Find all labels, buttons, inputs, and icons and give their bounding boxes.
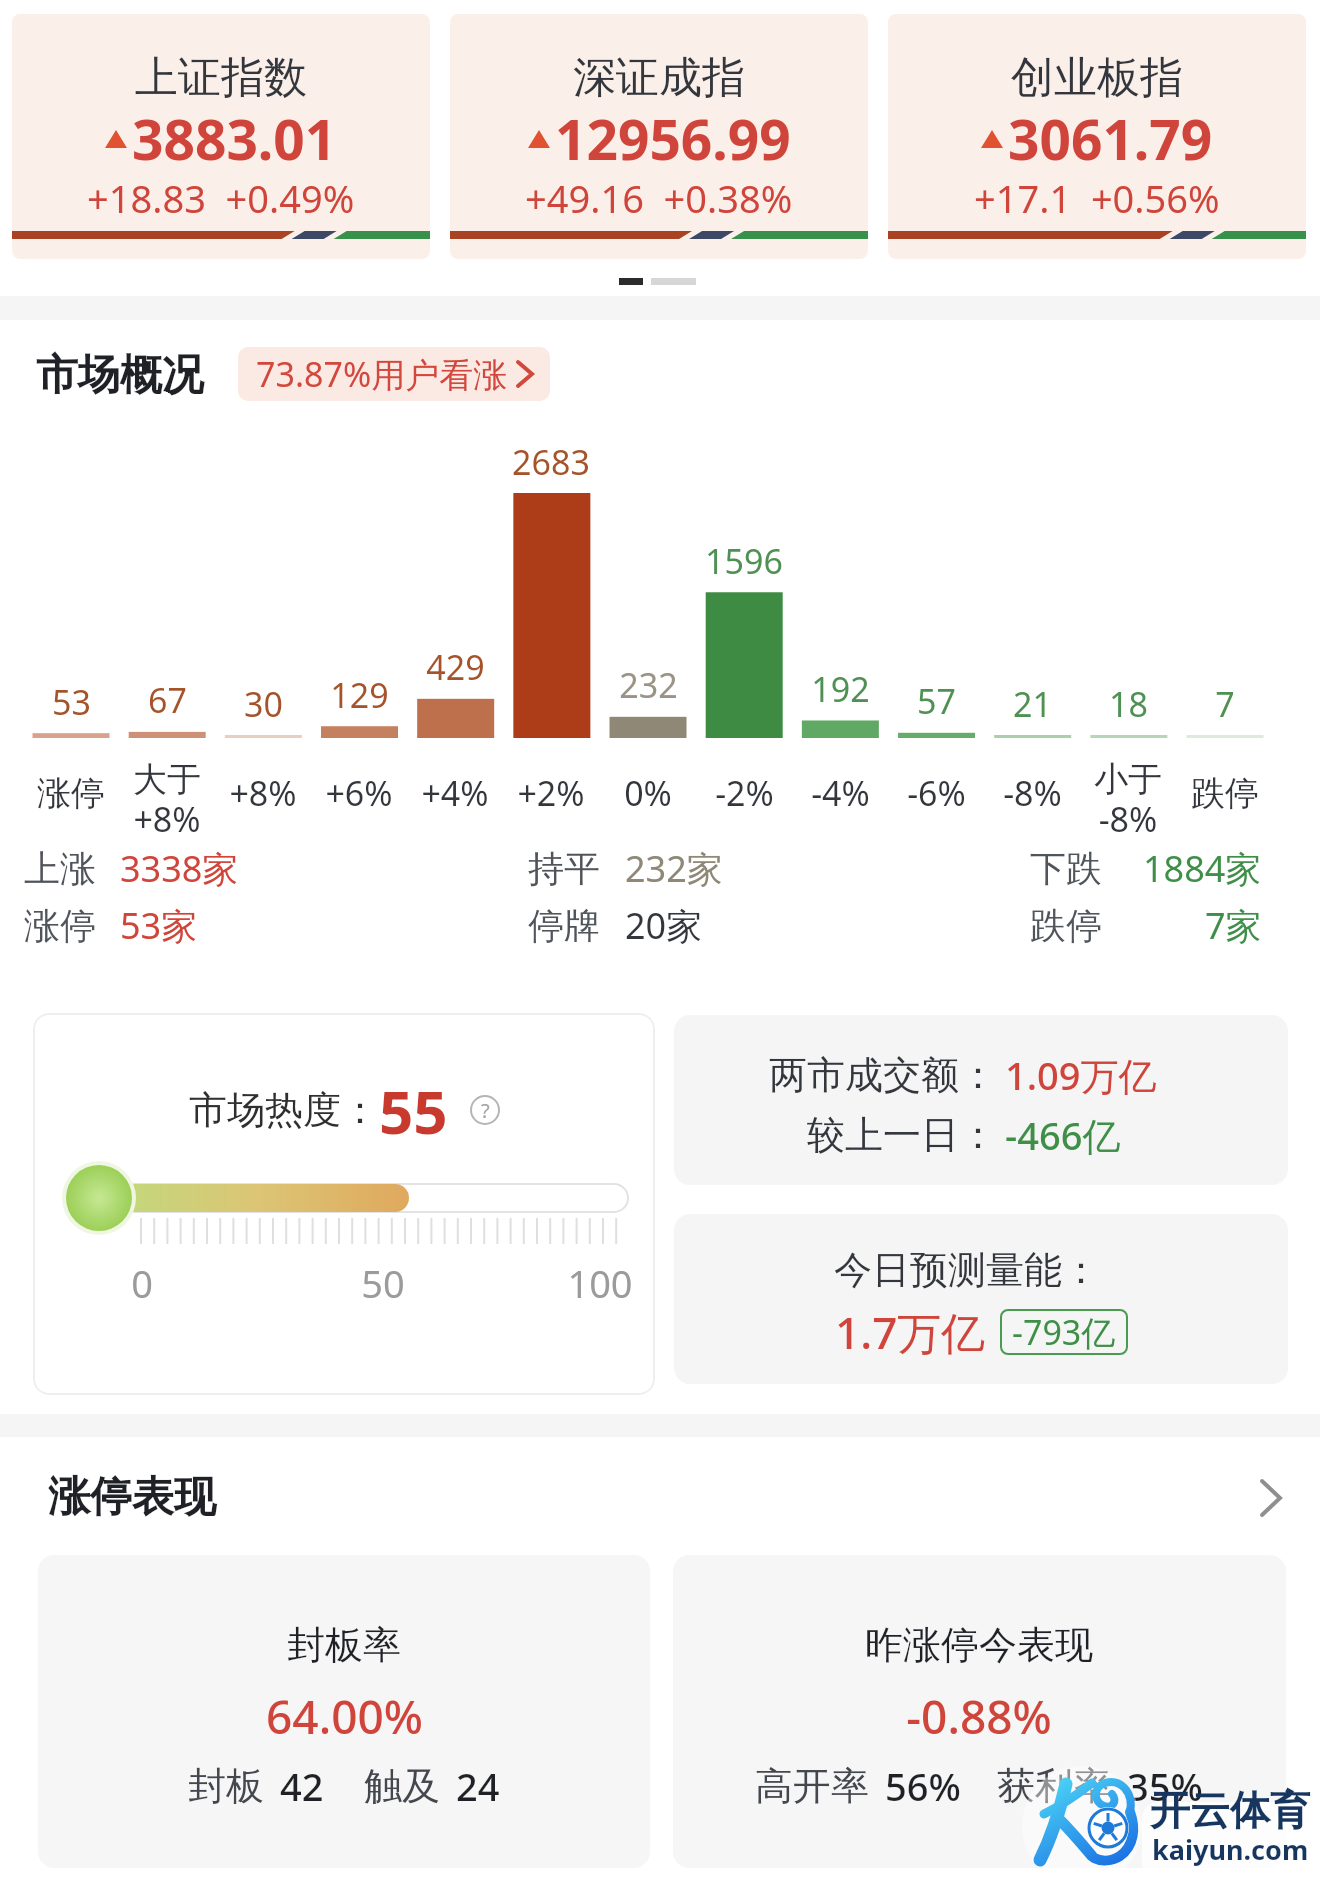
staticText: 涨停 [24, 903, 96, 948]
staticText: -793亿 [1012, 1309, 1116, 1355]
staticText: -0.88% [906, 1685, 1052, 1748]
staticText: 创业板指 [1011, 51, 1183, 105]
staticText: +18.83 +0.49% [87, 172, 355, 224]
button[interactable]: 上证指数 [12, 14, 430, 259]
staticText: 较上一日： [807, 1111, 997, 1159]
staticText: ? [481, 1097, 490, 1124]
staticText: 3883.01 [132, 101, 337, 176]
staticText: 1.09万亿 [1005, 1049, 1157, 1101]
staticText: 两市成交额： [769, 1051, 997, 1099]
button[interactable] [38, 1555, 650, 1868]
staticText: 7 [1215, 681, 1235, 727]
staticText: 67 [148, 677, 187, 723]
staticText: 3338家 [120, 844, 239, 893]
staticText: 今日预测量能： [834, 1246, 1100, 1294]
staticText: -2% [715, 770, 774, 816]
button[interactable]: 深证成指 [450, 14, 868, 259]
staticText: 232家 [625, 844, 723, 893]
staticText: 0 [131, 1257, 153, 1309]
staticText: 50 [361, 1257, 405, 1309]
staticText: 1596 [705, 538, 783, 584]
staticText: 停牌 [528, 903, 600, 948]
button[interactable]: 创业板指 [888, 14, 1306, 259]
button[interactable]: 73.87%用户看涨 [238, 347, 550, 401]
staticText: 持平 [528, 846, 600, 891]
staticText: 73.87%用户看涨 [256, 351, 508, 397]
staticText: 高开率 [755, 1762, 869, 1810]
staticText: 下跌 [1030, 846, 1102, 891]
staticText: 封板 [188, 1762, 264, 1810]
staticText: -4% [811, 770, 870, 816]
staticText: 跌停 [1030, 903, 1102, 948]
staticText: 30 [244, 681, 283, 727]
staticText: 21 [1013, 681, 1052, 727]
staticText: +8% [229, 770, 297, 816]
staticText: 昨涨停今表现 [865, 1621, 1093, 1669]
staticText: 1.7万亿 [835, 1302, 986, 1362]
staticText: 上证指数 [135, 51, 307, 105]
staticText: 7家 [1205, 901, 1262, 950]
staticText: 12956.99 [555, 101, 791, 176]
staticText: 24 [456, 1760, 500, 1812]
staticText: 232 [619, 662, 678, 708]
staticText: kaiyun.com [1152, 1831, 1309, 1868]
staticText: +6% [325, 770, 393, 816]
staticText: 192 [811, 666, 870, 712]
staticText: 涨停 [37, 772, 105, 815]
staticText: 小于 -8% [1094, 758, 1162, 842]
staticText: -8% [1003, 770, 1062, 816]
staticText: -466亿 [1005, 1109, 1121, 1161]
staticText: 53家 [120, 901, 198, 950]
staticText: +4% [421, 770, 489, 816]
staticText: 市场热度： [189, 1086, 379, 1134]
button[interactable] [673, 1555, 1286, 1868]
staticText: 上涨 [24, 846, 96, 891]
staticText: 2683 [512, 439, 590, 485]
staticText: 35% [1127, 1760, 1203, 1812]
staticText: 涨停表现 [48, 1471, 216, 1524]
staticText: 53 [52, 679, 91, 725]
staticText: 64.00% [266, 1685, 423, 1748]
staticText: 55 [379, 1070, 448, 1150]
staticText: 获利率 [997, 1762, 1111, 1810]
staticText: -6% [907, 770, 966, 816]
staticText: 跌停 [1191, 772, 1259, 815]
staticText: 大于 +8% [133, 758, 201, 842]
staticText: 1884家 [1143, 844, 1262, 893]
staticText: 触及 [364, 1762, 440, 1810]
staticText: 0% [624, 770, 672, 816]
button[interactable]: 涨停表现 [0, 1460, 1320, 1535]
staticText: 56% [885, 1760, 961, 1812]
staticText: +17.1 +0.56% [974, 172, 1220, 224]
staticText: 42 [280, 1760, 324, 1812]
staticText: 封板率 [287, 1621, 401, 1669]
staticText: 18 [1109, 681, 1148, 727]
staticText: +49.16 +0.38% [525, 172, 793, 224]
staticText: 深证成指 [573, 51, 745, 105]
staticText: +2% [517, 770, 585, 816]
staticText: 129 [330, 672, 389, 718]
staticText: 3061.79 [1008, 101, 1213, 176]
staticText: 100 [567, 1257, 633, 1309]
staticText: 市场概况 [36, 349, 204, 402]
staticText: 20家 [625, 901, 703, 950]
staticText: 429 [426, 644, 485, 690]
staticText: 57 [917, 678, 956, 724]
staticText: 开云体育 [1150, 1785, 1310, 1835]
